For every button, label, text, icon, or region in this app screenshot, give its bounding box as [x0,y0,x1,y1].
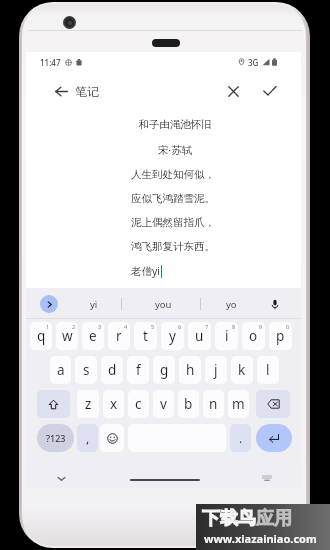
staticText: 老僧yi [131,264,161,278]
button[interactable]: b [178,390,199,418]
staticText: 8 [232,323,236,330]
button[interactable]: f [127,356,149,384]
staticText: , [86,430,90,446]
staticText: 4 [124,323,128,330]
staticText: 0 [286,323,290,330]
button[interactable]: d [101,356,123,384]
staticText: n [209,395,218,413]
staticText: l [266,361,270,379]
staticText: 3G [248,57,259,68]
button[interactable]: u [188,322,211,350]
staticText: j [214,361,218,379]
button[interactable]: Hide keyboard [52,469,70,487]
staticText: k [238,361,246,379]
staticText: v [160,395,167,413]
button[interactable]: h [179,356,201,384]
staticText: a [57,361,65,379]
staticText: w [62,327,73,345]
button[interactable]: r [108,322,130,350]
staticText: 11:47 [40,57,61,68]
button[interactable]: s [75,356,97,384]
button[interactable]: w [56,322,78,350]
staticText: you [155,298,172,311]
button[interactable]: k [231,356,253,384]
staticText: 1 [46,323,50,330]
staticText: www.xiazainiao.com [204,531,317,546]
button[interactable]: Shift [37,390,70,418]
staticText: m [232,395,245,413]
staticText: 下载鸟 [202,507,256,530]
staticText: 6 [178,323,182,330]
staticText: . [239,430,243,446]
button[interactable]: m [228,390,249,418]
button[interactable]: l [257,356,279,384]
button[interactable]: More suggestions [40,295,58,313]
staticText: 7 [205,323,209,330]
staticText: i [225,327,229,345]
button[interactable]: , [77,424,98,452]
button[interactable]: you [145,291,181,317]
button[interactable]: e [82,322,104,350]
button[interactable]: q [30,322,52,350]
staticText: r [116,327,122,345]
button[interactable]: Emoji [100,424,124,452]
button[interactable]: o [242,322,265,350]
staticText: 3 [98,323,102,330]
staticText: e [89,327,97,345]
staticText: f [136,361,141,379]
staticText: p [276,327,285,345]
button[interactable]: Change keyboard [259,470,275,486]
staticText: ?123 [46,432,66,444]
button[interactable]: z [77,390,99,418]
staticText: 2 [72,323,76,330]
staticText: yi [90,298,98,311]
staticText: c [135,395,142,413]
button[interactable]: a [50,356,71,384]
staticText: 9 [259,323,263,330]
staticText: 应用 [256,507,292,530]
staticText: b [184,395,193,413]
staticText: u [195,327,204,345]
button[interactable]: Back [48,78,74,104]
button[interactable]: Enter [256,424,292,452]
button[interactable]: ?123 [37,424,74,452]
button[interactable]: c [128,390,149,418]
staticText: 5 [151,323,155,330]
staticText: 泥上偶然留指爪， [131,216,215,229]
staticText: s [83,361,90,379]
staticText: o [249,327,258,345]
button[interactable]: g [153,356,175,384]
staticText: t [143,327,148,345]
staticText: 人生到处知何似， [131,168,215,181]
staticText: 鸿飞那复计东西。 [131,240,215,253]
staticText: y [169,327,176,345]
button[interactable]: i [215,322,238,350]
staticText: 笔记 [75,84,99,99]
staticText: yo [226,298,237,311]
button[interactable]: Backspace [256,390,290,418]
button[interactable]: t [134,322,157,350]
staticText: 宋·苏轼 [131,143,219,157]
button[interactable]: yo [215,291,247,317]
staticText: d [108,361,117,379]
button[interactable]: n [203,390,224,418]
staticText: q [37,327,46,345]
button[interactable]: Save [257,78,283,104]
button[interactable]: Voice input [265,294,285,314]
staticText: 和子由渑池怀旧 [131,118,219,131]
staticText: g [160,361,169,379]
staticText: 应似飞鸿踏雪泥。 [131,192,215,205]
button[interactable]: j [205,356,227,384]
staticText: x [110,395,118,413]
button[interactable]: . [230,424,251,452]
button[interactable]: Discard [220,78,246,104]
button[interactable]: y [161,322,184,350]
button[interactable]: x [103,390,124,418]
button[interactable]: v [153,390,174,418]
button[interactable]: yi [79,291,109,317]
staticText: h [186,361,195,379]
staticText: z [85,395,92,413]
button[interactable]: p [269,322,292,350]
